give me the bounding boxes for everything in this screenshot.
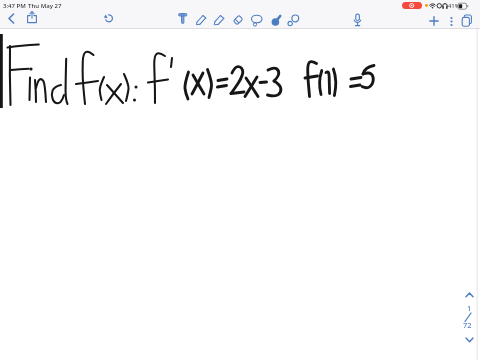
staticText: 3:47 PM — [3, 2, 26, 10]
button[interactable] — [465, 291, 474, 299]
button[interactable] — [232, 14, 244, 26]
button[interactable] — [461, 14, 473, 27]
button[interactable] — [7, 13, 17, 24]
button[interactable] — [195, 14, 207, 26]
button[interactable] — [178, 13, 188, 24]
button[interactable] — [270, 14, 282, 27]
button[interactable] — [465, 336, 474, 344]
staticText: 72 — [463, 320, 472, 330]
button[interactable] — [353, 13, 362, 28]
button[interactable] — [26, 11, 38, 24]
button[interactable] — [402, 2, 422, 9]
button[interactable] — [287, 14, 300, 27]
button[interactable] — [103, 13, 115, 24]
staticText: 1 — [467, 303, 472, 313]
staticText: 41% — [448, 2, 460, 10]
button[interactable] — [250, 14, 264, 27]
button[interactable] — [213, 14, 225, 26]
staticText: Thu May 27 — [28, 2, 62, 10]
button[interactable] — [429, 16, 439, 26]
button[interactable] — [448, 16, 455, 27]
